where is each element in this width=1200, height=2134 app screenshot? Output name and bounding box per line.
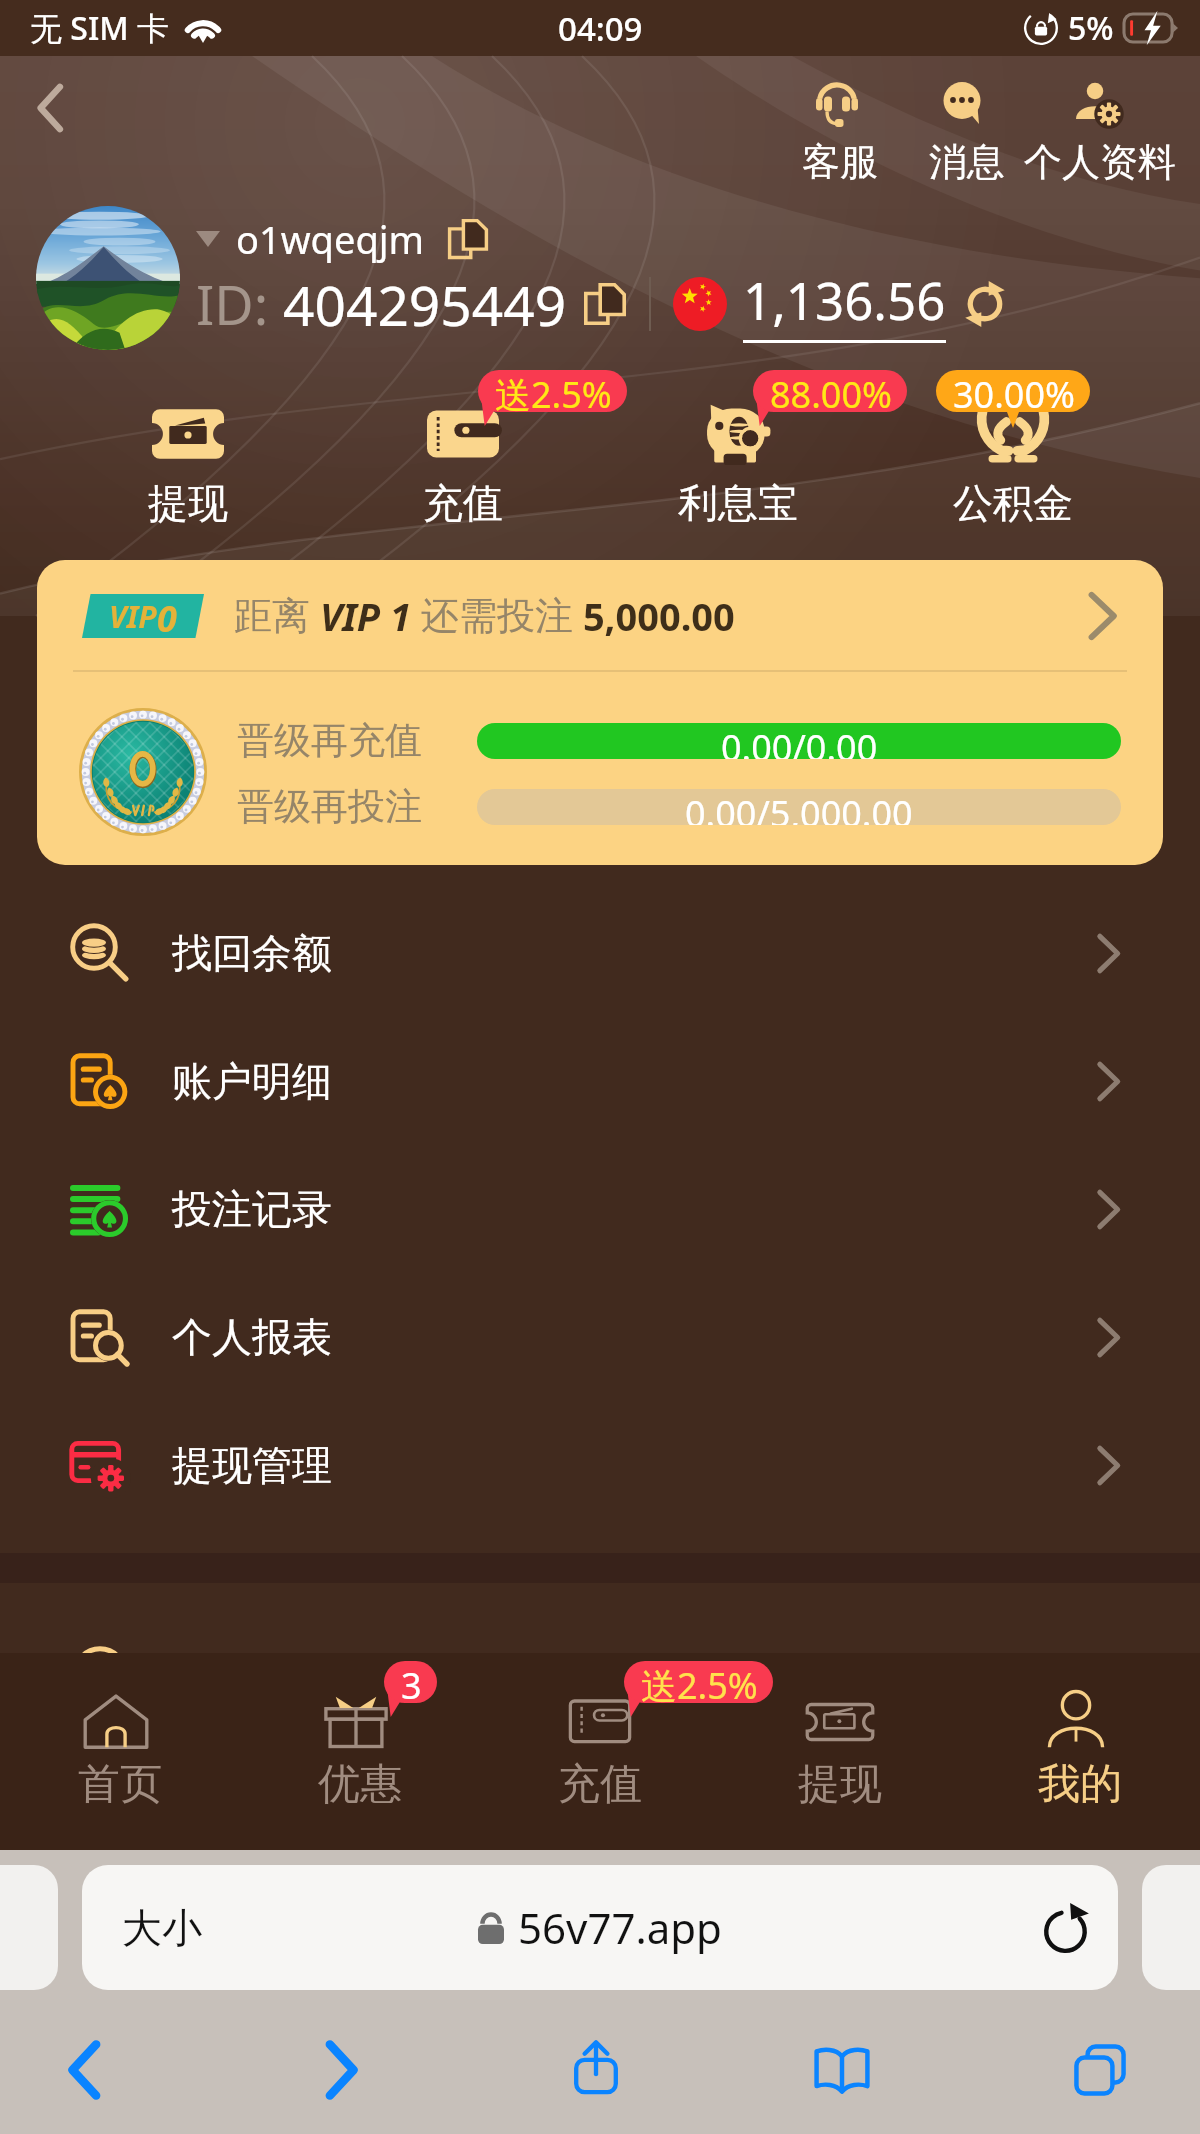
button[interactable]: 账户明细 (0, 1017, 1200, 1145)
button[interactable]: 我的 (960, 1653, 1200, 1850)
staticText: 账户明细 (172, 1056, 332, 1106)
button[interactable]: Reload (1040, 1902, 1092, 1954)
button[interactable]: 找回余额 (0, 889, 1200, 1017)
staticText: 3 (401, 1661, 422, 1703)
button[interactable]: 充值 (325, 370, 600, 524)
staticText: 提现 (798, 1758, 882, 1811)
staticText: 消息 (929, 138, 1005, 186)
button[interactable]: 投注记录 (0, 1145, 1200, 1273)
staticText: 优惠 (318, 1758, 402, 1811)
staticText: o1wqeqjm (236, 213, 425, 265)
staticText: 无 SIM 卡 (30, 6, 169, 50)
staticText: 0 (157, 594, 177, 638)
staticText: 404295449 (283, 267, 567, 342)
staticText: 还需投注 (421, 592, 573, 640)
staticText: 送2.5% (495, 370, 612, 412)
button[interactable]: Back (12, 70, 88, 146)
button[interactable]: Back (24, 2010, 144, 2130)
button[interactable]: 个人报表 (0, 1273, 1200, 1401)
staticText: 晋级再充值 (237, 717, 422, 764)
button[interactable]: Tabs (1042, 2010, 1162, 2130)
button[interactable]: Bookmarks (787, 2010, 907, 2130)
staticText: 04:09 (558, 6, 643, 51)
staticText: 我的 (1038, 1758, 1122, 1811)
button[interactable]: 充值 (480, 1653, 720, 1850)
button[interactable]: 公积金 (875, 370, 1150, 524)
button[interactable]: 个人资料 (1000, 80, 1200, 184)
button[interactable]: 利息宝 (600, 370, 875, 524)
button[interactable]: Forward (282, 2010, 402, 2130)
staticText: 客服 (802, 138, 878, 186)
button[interactable]: 提现 (720, 1653, 960, 1850)
staticText: VIP 1 (310, 590, 421, 642)
staticText: 距离 (234, 592, 310, 640)
staticText: 首页 (78, 1758, 162, 1811)
staticText: 88.00% (770, 370, 892, 412)
staticText: 大小 (122, 1903, 202, 1953)
staticText: 提现管理 (172, 1440, 332, 1490)
staticText: 个人资料 (1024, 138, 1176, 186)
staticText: 56v77.app (518, 1899, 722, 1956)
button[interactable]: 提现 (50, 370, 325, 524)
staticText: 0.00/5,000.00 (685, 789, 913, 825)
staticText: 晋级再投注 (237, 783, 422, 830)
button[interactable]: Share (536, 2010, 656, 2130)
staticText: 送2.5% (641, 1661, 758, 1703)
staticText: 0.00/0.00 (721, 723, 878, 759)
button[interactable]: Copy ID (581, 280, 629, 328)
staticText: ID: (196, 267, 269, 341)
button[interactable]: 首页 (0, 1653, 240, 1850)
staticText: 找回余额 (172, 928, 332, 978)
staticText: 公积金 (953, 478, 1073, 528)
button[interactable]: 优惠 (240, 1653, 480, 1850)
staticText: VIP (109, 596, 157, 637)
button[interactable]: 消息 (867, 80, 1067, 184)
staticText: 5,000.00 (573, 590, 735, 642)
button[interactable]: 提现管理 (0, 1401, 1200, 1529)
staticText: 5% (1068, 6, 1114, 50)
staticText: 充值 (423, 478, 503, 528)
button[interactable]: VIP (37, 560, 1163, 865)
button[interactable]: Refresh balance (962, 281, 1008, 327)
staticText: 投注记录 (172, 1184, 332, 1234)
staticText: 提现 (148, 478, 228, 528)
button[interactable]: Copy username (445, 216, 491, 262)
staticText: 利息宝 (678, 478, 798, 528)
staticText: 1,136.56 (743, 265, 946, 334)
staticText: 30.00% (953, 370, 1075, 412)
staticText: 充值 (558, 1758, 642, 1811)
button[interactable]: 大小 (82, 1865, 1118, 1990)
staticText: 个人报表 (172, 1312, 332, 1362)
button[interactable]: 客服 (740, 80, 940, 184)
